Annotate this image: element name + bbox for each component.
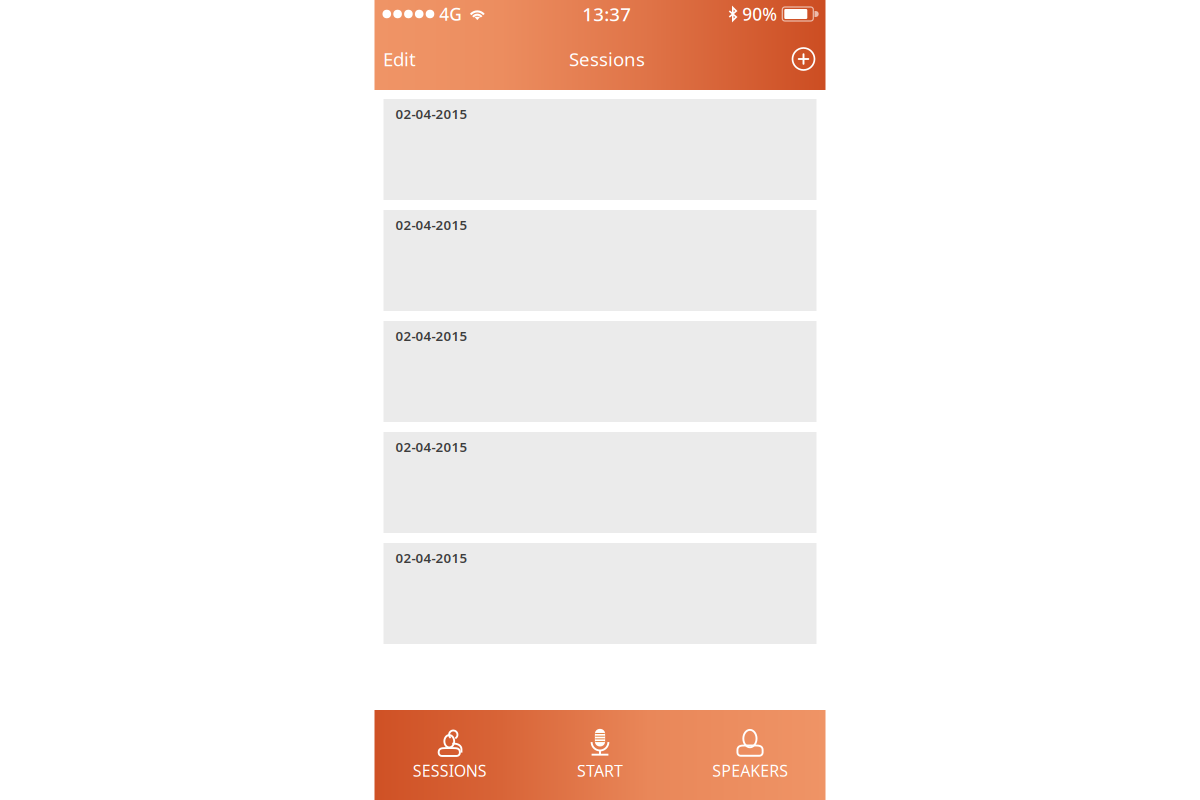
staticText: 02-04-2015 [395, 327, 467, 345]
button[interactable]: START [525, 710, 675, 800]
staticText: 02-04-2015 [395, 105, 467, 123]
button[interactable]: SESSIONS [374, 710, 525, 800]
button[interactable]: 02-04-2015 [383, 99, 816, 200]
staticText: SESSIONS [413, 760, 487, 781]
staticText: 4G [439, 2, 462, 25]
staticText: SPEAKERS [712, 760, 788, 781]
staticText: 02-04-2015 [395, 438, 467, 456]
button[interactable]: SPEAKERS [675, 710, 825, 800]
staticText: Edit [383, 47, 416, 71]
staticText: 02-04-2015 [395, 549, 467, 567]
staticText: 90% [742, 2, 777, 25]
button[interactable]: 02-04-2015 [383, 321, 816, 422]
button[interactable]: Edit [374, 37, 424, 81]
staticText: 02-04-2015 [395, 216, 467, 234]
button[interactable]: 02-04-2015 [383, 432, 816, 533]
staticText: 13:37 [582, 2, 631, 26]
staticText: START [577, 760, 623, 781]
staticText: Sessions [569, 47, 645, 71]
button[interactable]: 02-04-2015 [383, 210, 816, 311]
button[interactable]: Add session [781, 37, 825, 81]
button[interactable]: 02-04-2015 [383, 543, 816, 644]
